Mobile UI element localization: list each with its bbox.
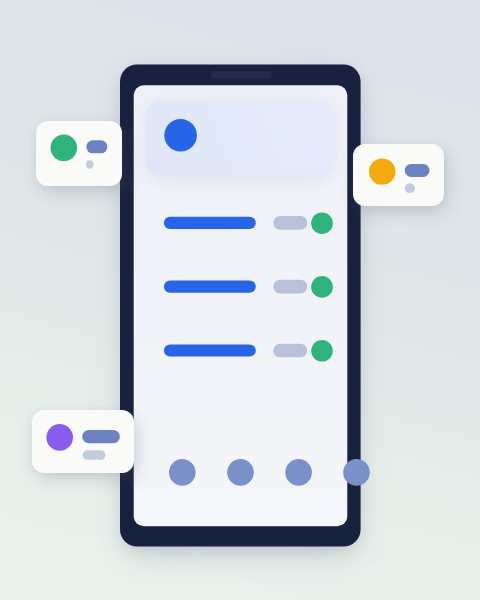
button[interactable]: Notification card one (36, 121, 122, 186)
button[interactable]: Notification card three (32, 410, 134, 473)
button[interactable]: Notification card two (353, 144, 444, 206)
